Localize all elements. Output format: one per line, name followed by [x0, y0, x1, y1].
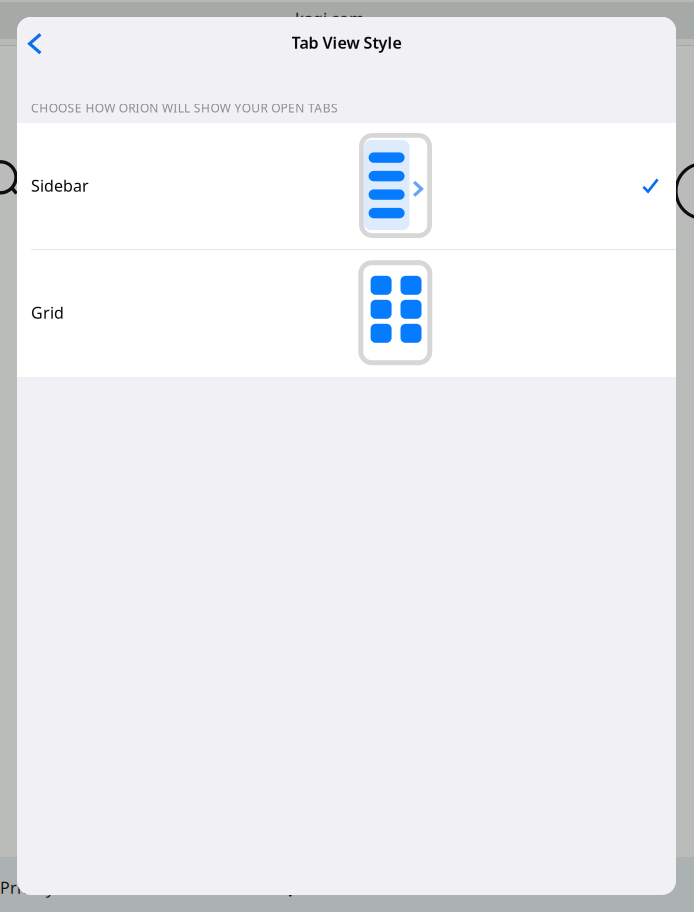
- button[interactable]: Grid: [17, 250, 676, 377]
- button[interactable]: Back: [18, 22, 60, 66]
- staticText: Tab View Style: [291, 32, 401, 53]
- staticText: Privacy: [0, 877, 54, 898]
- button[interactable]: Sidebar: [17, 123, 676, 249]
- staticText: kagi.com: [295, 8, 364, 29]
- staticText: CHOOSE HOW ORION WILL SHOW YOUR OPEN TAB…: [31, 100, 338, 116]
- staticText: Grid: [31, 302, 64, 323]
- staticText: Sidebar: [31, 175, 89, 196]
